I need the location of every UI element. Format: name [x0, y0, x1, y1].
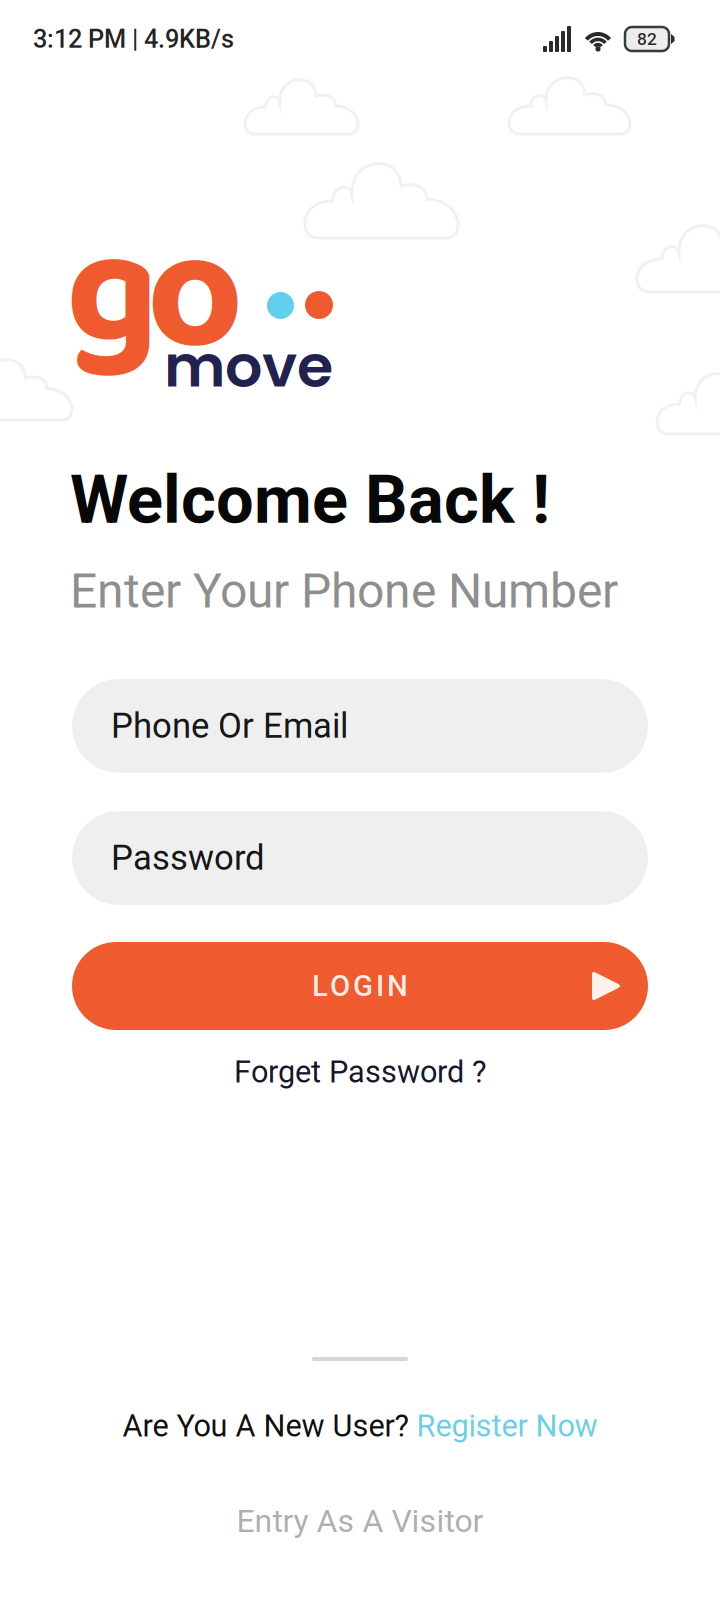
- staticText: Enter Your Phone Number: [70, 563, 618, 619]
- staticText: LOGIN: [312, 969, 408, 1003]
- button[interactable]: Forget Password ?: [72, 1049, 648, 1095]
- button[interactable]: Entry As A Visitor: [0, 1499, 720, 1543]
- button[interactable]: LOGIN: [72, 942, 648, 1030]
- staticText: Forget Password ?: [234, 1054, 486, 1090]
- staticText: Entry As A Visitor: [236, 1502, 483, 1540]
- button[interactable]: Register Now: [416, 1408, 597, 1444]
- staticText: 82: [637, 29, 657, 49]
- staticText: Welcome Back !: [70, 461, 550, 539]
- staticText: move: [164, 325, 333, 407]
- staticText: 3:12 PM | 4.9KB/s: [33, 24, 234, 54]
- staticText: Register Now: [416, 1408, 597, 1444]
- button[interactable]: Phone Or Email: [72, 679, 648, 773]
- staticText: go: [66, 163, 243, 430]
- button[interactable]: Password: [72, 811, 648, 905]
- staticText: Password: [111, 838, 265, 878]
- staticText: Are You A New User?: [122, 1408, 408, 1444]
- staticText: Phone Or Email: [111, 706, 348, 746]
